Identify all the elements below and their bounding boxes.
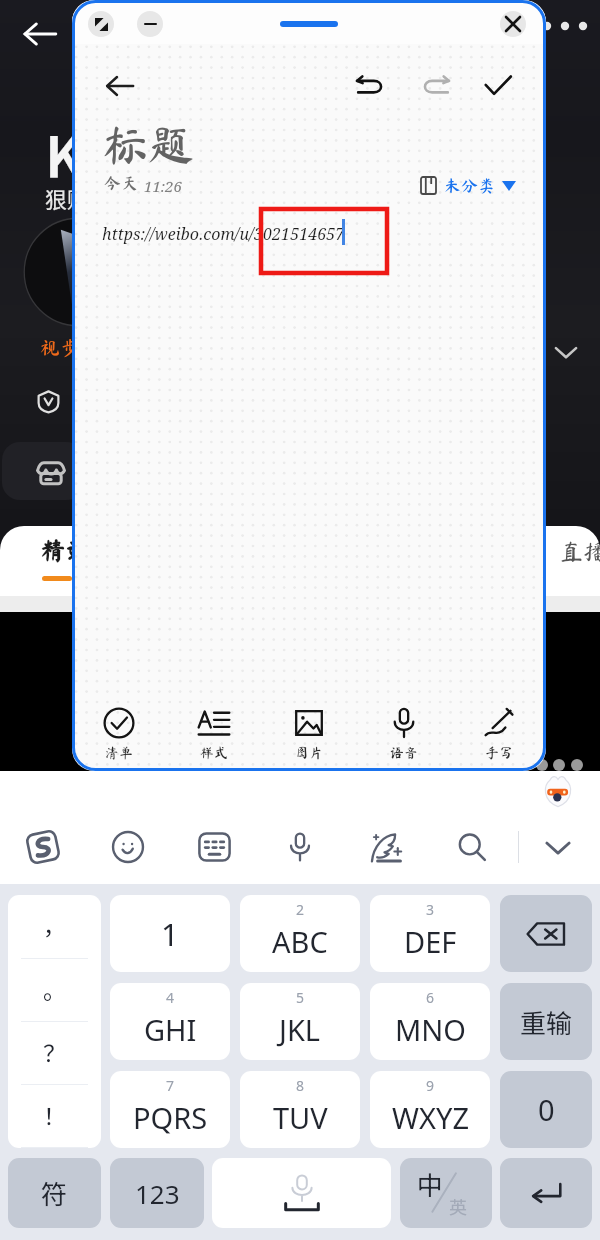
staticText: 未分类 [444, 177, 495, 194]
staticText: 语音 [390, 746, 418, 760]
button[interactable]: Voice input [274, 821, 326, 873]
staticText: 样式 [200, 746, 228, 760]
button[interactable]: 6 [370, 983, 490, 1060]
staticText: GHI [144, 1010, 197, 1049]
button[interactable]: Sogou input [17, 821, 69, 873]
staticText: 5 [296, 988, 305, 1007]
staticText: 标题 [102, 122, 194, 168]
button[interactable]: 5 [240, 983, 360, 1060]
button[interactable]: Assistant [540, 775, 576, 811]
button[interactable]: Back [96, 62, 144, 110]
button[interactable]: Resize window [88, 11, 114, 37]
staticText: 清单 [105, 746, 133, 760]
staticText: ？ [43, 1035, 66, 1068]
button[interactable]: 8 [240, 1071, 360, 1148]
staticText: 7 [166, 1076, 175, 1095]
button[interactable]: Redo [412, 62, 460, 110]
button[interactable]: 未分类 [420, 176, 516, 195]
button[interactable]: Move window [280, 21, 338, 27]
staticText: JKL [279, 1010, 321, 1049]
button[interactable]: 1 [110, 895, 230, 972]
staticText: 符 [41, 1174, 68, 1212]
staticText: 直播 [560, 540, 600, 563]
staticText: 今天 [104, 174, 138, 191]
button[interactable]: Handwriting [360, 821, 412, 873]
staticText: 英 [449, 1193, 467, 1219]
staticText: 中 [417, 1165, 444, 1203]
staticText: MNO [395, 1010, 466, 1049]
button[interactable]: 符 [8, 1158, 101, 1228]
button[interactable]: 4 [110, 983, 230, 1060]
button[interactable]: Search [446, 821, 498, 873]
staticText: 123 [135, 1176, 180, 1211]
staticText: 3 [426, 900, 435, 919]
staticText: 1 [161, 913, 179, 955]
button[interactable]: 语音 [356, 703, 451, 764]
button[interactable]: Punctuation [8, 895, 101, 1148]
button[interactable]: Backspace [500, 895, 592, 972]
staticText: 图片 [295, 746, 323, 760]
button[interactable]: Space [212, 1158, 391, 1228]
button[interactable]: 图片 [261, 703, 356, 764]
staticText: https://weibo.com/u/3021514657 [102, 223, 345, 245]
button[interactable]: 清单 [72, 703, 166, 764]
staticText: 。 [43, 972, 66, 1005]
button[interactable]: Back [12, 6, 68, 62]
button[interactable]: 重输 [500, 983, 592, 1060]
staticText: 视步 [40, 337, 80, 357]
staticText: PQRS [133, 1098, 208, 1137]
button[interactable]: 3 [370, 895, 490, 972]
staticText: 11:26 [144, 176, 182, 196]
button[interactable]: 123 [110, 1158, 204, 1228]
staticText: 狠赚 [45, 182, 90, 214]
button[interactable]: Hide keyboard [532, 821, 584, 873]
button[interactable]: 9 [370, 1071, 490, 1148]
staticText: 重输 [520, 1003, 573, 1041]
button[interactable]: Close window [500, 11, 526, 37]
button[interactable]: Expand [546, 332, 586, 372]
button[interactable]: Official guarantee [28, 381, 68, 421]
button[interactable]: 0 [500, 1071, 592, 1148]
staticText: DEF [404, 922, 457, 961]
staticText: ！ [43, 1098, 66, 1131]
staticText: 精选 [40, 538, 91, 563]
staticText: WXYZ [392, 1098, 469, 1137]
button[interactable]: More options [540, 6, 596, 46]
button[interactable]: 中 [400, 1158, 492, 1228]
staticText: 0 [538, 1090, 555, 1129]
button[interactable]: Minimize window [137, 11, 163, 37]
button[interactable]: 样式 [166, 703, 261, 764]
staticText: 8 [296, 1076, 305, 1095]
button[interactable]: 手写 [451, 703, 546, 764]
button[interactable]: Switch keyboard [188, 821, 240, 873]
staticText: 手写 [485, 746, 513, 760]
button[interactable]: 2 [240, 895, 360, 972]
staticText: K [45, 113, 83, 194]
staticText: ABC [272, 922, 328, 961]
button[interactable]: Shop [2, 442, 84, 500]
button[interactable]: 7 [110, 1071, 230, 1148]
button[interactable]: Save [474, 62, 522, 110]
button[interactable]: Emoji [102, 821, 154, 873]
staticText: 2 [296, 900, 305, 919]
staticText: 9 [426, 1076, 435, 1095]
staticText: 6 [426, 988, 435, 1007]
staticText: ， [43, 908, 66, 941]
staticText: 4 [166, 988, 175, 1007]
button[interactable]: Undo [346, 62, 394, 110]
button[interactable]: Enter [500, 1158, 592, 1228]
staticText: TUV [273, 1098, 328, 1137]
